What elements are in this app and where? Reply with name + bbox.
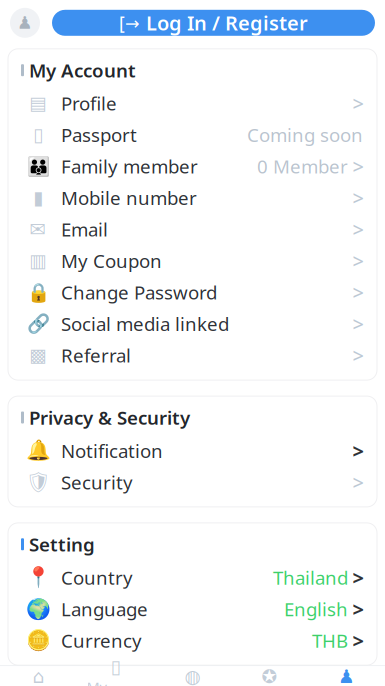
button[interactable]: [→ xyxy=(52,10,375,36)
staticText: Thailand xyxy=(273,565,348,590)
button[interactable]: ▮ xyxy=(8,182,377,214)
staticText: 🔒 xyxy=(26,282,49,303)
staticText: ✉ xyxy=(29,218,46,241)
staticText: > xyxy=(352,216,363,243)
button[interactable]: ◍ xyxy=(154,663,231,686)
button[interactable]: 🌍 xyxy=(8,593,377,625)
staticText: > xyxy=(352,564,363,591)
staticText: ◍ xyxy=(184,666,200,686)
button[interactable]: ▥ xyxy=(8,245,377,277)
button[interactable]: 📍 xyxy=(8,562,377,593)
staticText: Language xyxy=(61,596,148,621)
staticText: > xyxy=(352,311,363,337)
button[interactable]: ⌂ xyxy=(0,663,77,686)
staticText: ⌂ xyxy=(32,666,44,686)
staticText: ✪ xyxy=(261,666,277,686)
button[interactable]: 🔗 xyxy=(8,308,377,340)
staticText: 0 Member xyxy=(257,154,348,179)
staticText: My Coupon xyxy=(61,248,162,273)
staticText: [→ xyxy=(119,11,140,34)
staticText: ▩ xyxy=(29,345,47,366)
staticText: ▥ xyxy=(29,250,47,271)
staticText: My Booking xyxy=(86,677,144,686)
button[interactable]: ♟ xyxy=(308,663,385,686)
staticText: Privacy & Security xyxy=(29,405,190,430)
button[interactable]: 🔔 xyxy=(8,435,377,466)
staticText: Log In / Register xyxy=(146,9,308,36)
staticText: 👪 xyxy=(26,156,49,177)
staticText: > xyxy=(352,437,363,464)
staticText: Security xyxy=(61,470,133,495)
button[interactable]: 👪 xyxy=(8,151,377,182)
staticText: ▯ xyxy=(110,656,120,677)
button[interactable]: 🔒 xyxy=(8,277,377,308)
staticText: > xyxy=(352,342,363,369)
button[interactable]: ▯ xyxy=(8,119,377,151)
staticText: ▮ xyxy=(33,187,43,208)
staticText: Passport xyxy=(61,122,137,147)
button[interactable]: ✪ xyxy=(231,663,308,686)
staticText: ♟ xyxy=(17,13,33,33)
button[interactable]: ✉ xyxy=(8,214,377,245)
button[interactable]: ▤ xyxy=(8,88,377,119)
staticText: ♟ xyxy=(338,666,355,686)
staticText: > xyxy=(352,153,363,180)
staticText: > xyxy=(352,596,363,622)
staticText: Notification xyxy=(61,438,163,463)
button[interactable]: 🛡 xyxy=(8,466,377,498)
staticText: My Account xyxy=(29,58,136,83)
staticText: ▤ xyxy=(29,93,47,114)
staticText: > xyxy=(352,90,363,117)
staticText: > xyxy=(352,279,363,306)
button[interactable]: 🪙 xyxy=(8,625,377,656)
staticText: 🛡 xyxy=(25,471,50,494)
staticText: > xyxy=(352,469,363,495)
staticText: > xyxy=(352,185,363,211)
staticText: Profile xyxy=(61,91,117,116)
staticText: THB xyxy=(312,628,348,653)
button[interactable]: ▩ xyxy=(8,340,377,371)
button[interactable]: ▯ xyxy=(77,653,154,686)
staticText: Email xyxy=(61,217,108,242)
staticText: 📍 xyxy=(25,566,50,589)
staticText: Change Password xyxy=(61,280,217,305)
staticText: Coming soon xyxy=(247,122,363,147)
staticText: Referral xyxy=(61,343,131,368)
staticText: 🪙 xyxy=(25,629,50,652)
staticText: > xyxy=(352,627,363,654)
staticText: Country xyxy=(61,565,133,590)
staticText: English xyxy=(284,596,348,621)
staticText: ▯ xyxy=(33,124,43,145)
staticText: Family member xyxy=(61,154,198,179)
staticText: > xyxy=(352,248,363,274)
staticText: Currency xyxy=(61,628,142,653)
staticText: 🔔 xyxy=(25,439,50,462)
staticText: Mobile number xyxy=(61,185,197,210)
staticText: Social media linked xyxy=(61,311,229,336)
staticText: 🌍 xyxy=(25,597,50,620)
staticText: Setting xyxy=(29,532,95,557)
staticText: 🔗 xyxy=(26,313,49,334)
